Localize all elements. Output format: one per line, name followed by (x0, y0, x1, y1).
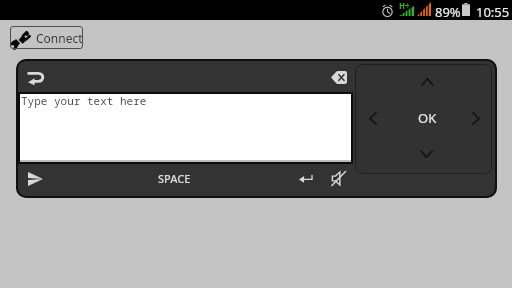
staticText: 10:55 (476, 3, 510, 21)
staticText: OK (418, 109, 437, 127)
button[interactable]: SPACE (142, 165, 206, 192)
staticText: H+ (399, 0, 410, 11)
staticText: Type your text here (21, 93, 147, 108)
button[interactable]: Down (410, 142, 442, 166)
button[interactable]: Mute (322, 164, 354, 192)
button[interactable]: New line (19, 63, 52, 93)
button[interactable]: OK (405, 103, 449, 133)
button[interactable]: Up (411, 70, 443, 94)
button[interactable]: Send (20, 165, 50, 192)
button[interactable]: Connect (10, 26, 83, 49)
button[interactable]: Left (360, 100, 386, 136)
button[interactable]: Right (463, 100, 489, 136)
staticText: SPACE (158, 171, 191, 186)
staticText: 89% (435, 3, 461, 21)
staticText: Connect (36, 30, 83, 46)
button[interactable]: Enter (292, 165, 320, 192)
button[interactable]: Backspace (323, 62, 355, 92)
